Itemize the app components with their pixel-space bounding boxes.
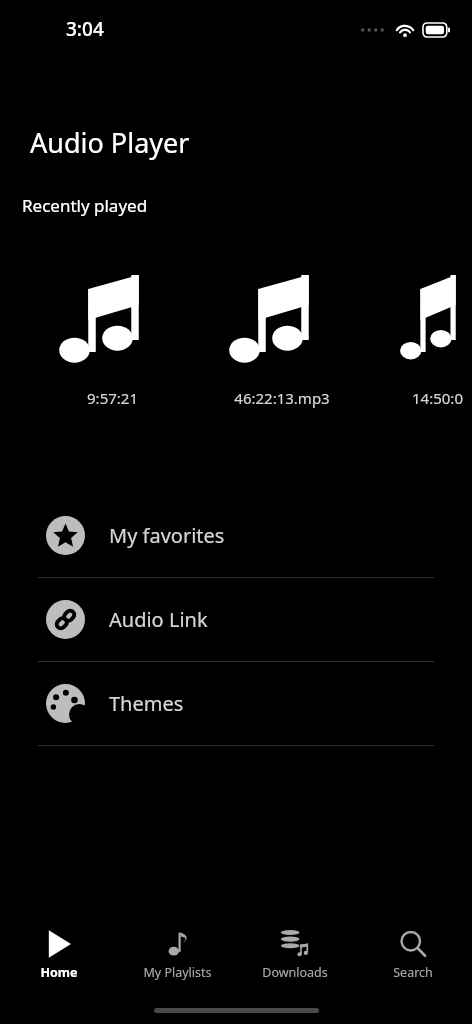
button[interactable]: 14:50:0	[402, 272, 472, 408]
staticText: Downloads	[262, 964, 328, 981]
staticText: My Playlists	[143, 964, 212, 981]
staticText: Search	[393, 964, 433, 981]
button[interactable]: Downloads	[236, 920, 354, 996]
button[interactable]: 9:57:21	[62, 272, 232, 408]
staticText: Home	[40, 964, 78, 981]
other: Downloads	[280, 929, 310, 959]
other: My Playlists	[164, 931, 190, 957]
staticText: My favorites	[109, 522, 225, 549]
button[interactable]: Home	[0, 920, 118, 996]
staticText: 46:22:13.mp3	[234, 388, 330, 408]
button[interactable]: Search	[354, 920, 472, 996]
button[interactable]: Audio Link	[0, 578, 472, 661]
staticText: 9:57:21	[87, 388, 138, 408]
button[interactable]: My favorites	[0, 494, 472, 577]
staticText: Audio Player	[30, 124, 190, 161]
button[interactable]: 46:22:13.mp3	[232, 272, 402, 408]
button[interactable]: Themes	[0, 662, 472, 745]
button[interactable]: My Playlists	[118, 920, 236, 996]
other: Search	[399, 930, 427, 958]
staticText: Audio Link	[109, 606, 208, 633]
staticText: 3:04	[66, 16, 104, 42]
staticText: Recently played	[22, 194, 148, 217]
other: Home	[44, 929, 74, 959]
staticText: 14:50:0	[412, 388, 463, 408]
staticText: Themes	[109, 690, 184, 717]
